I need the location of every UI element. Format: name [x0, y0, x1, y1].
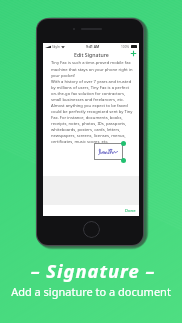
- button[interactable]: Done: [125, 208, 136, 214]
- button[interactable]: Add signature: [129, 49, 138, 58]
- staticText: Done: [125, 208, 136, 214]
- staticText: – Signature –: [2, 258, 182, 283]
- staticText: Skyln: [52, 45, 60, 49]
- staticText: Edit Signature: [74, 51, 109, 58]
- staticText: Tiny Fax is such a time-proved mobile fa…: [51, 60, 133, 144]
- staticText: 100%: [121, 45, 130, 49]
- staticText: Add a signature to a document: [0, 284, 182, 299]
- staticText: 9:41 AM: [86, 44, 100, 49]
